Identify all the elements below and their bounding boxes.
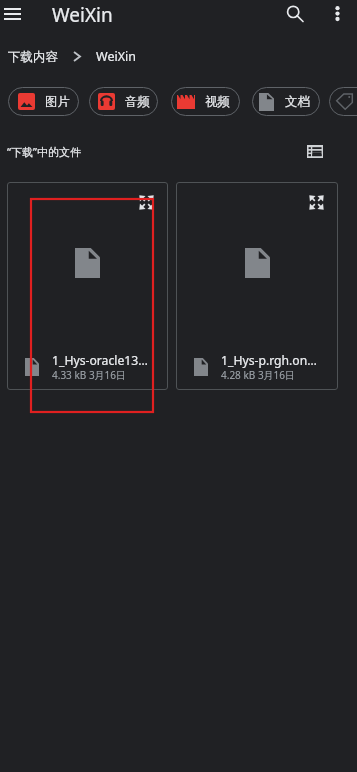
button[interactable]: Expand preview [139,195,154,210]
staticText: 4.28 kB 3月16日 [221,368,296,382]
staticText: WeiXin [96,48,136,65]
staticText: “下载”中的文件 [7,144,81,159]
staticText: 文档 [285,94,310,110]
button[interactable]: 下载内容 [6,47,60,67]
staticText: 1_Hys-oracle13… [52,352,148,369]
button[interactable]: 文档 [252,87,320,116]
button[interactable]: WeiXin [94,46,138,67]
staticText: 1_Hys-p.rgh.on… [221,352,317,369]
staticText: 下载内容 [8,49,58,65]
button[interactable]: 图片 [8,87,79,116]
button[interactable]: Search [278,1,314,27]
staticText: WeiXin [52,2,113,25]
button[interactable]: Switch to list view [300,137,329,166]
button[interactable]: Tags [329,87,357,116]
button[interactable]: 视频 [171,87,240,116]
button[interactable]: Open navigation menu [0,0,26,27]
button[interactable]: More options [322,1,352,27]
staticText: 音频 [125,94,150,110]
staticText: 4.33 kB 3月16日 [52,368,127,382]
button[interactable]: Expand preview [176,182,338,390]
staticText: 视频 [205,94,230,110]
button[interactable]: Expand preview [7,182,168,390]
button[interactable]: Expand preview [309,195,324,210]
button[interactable]: 音频 [89,87,158,116]
staticText: 图片 [45,94,70,110]
